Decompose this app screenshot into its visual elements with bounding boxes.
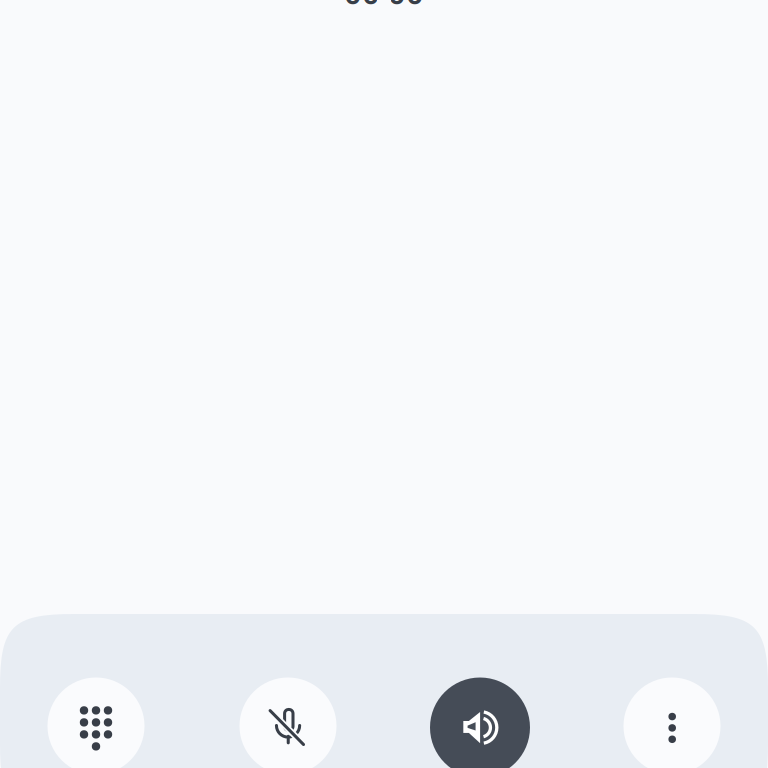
- button[interactable]: Speaker: [384, 674, 576, 768]
- button[interactable]: Keypad: [0, 674, 192, 768]
- button[interactable]: Unmute: [192, 674, 384, 768]
- button[interactable]: More options: [576, 674, 768, 768]
- staticText: 00:00: [344, 0, 424, 13]
